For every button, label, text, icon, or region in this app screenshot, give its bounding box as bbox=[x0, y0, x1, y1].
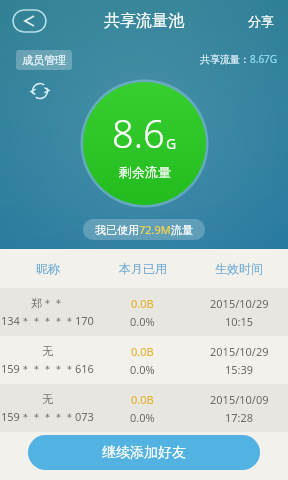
button[interactable]: Refresh bbox=[29, 80, 51, 102]
staticText: 0.0% bbox=[130, 362, 155, 377]
staticText: 本月已用 bbox=[119, 261, 167, 276]
staticText: 8.6 bbox=[112, 107, 165, 159]
staticText: 2015/10/29 bbox=[210, 296, 269, 311]
staticText: 无 bbox=[42, 344, 53, 358]
staticText: 共享流量： bbox=[200, 53, 250, 66]
button[interactable]: 成员管理 bbox=[16, 50, 72, 70]
staticText: 8.67G bbox=[250, 52, 278, 66]
staticText: 10:15 bbox=[225, 314, 254, 329]
staticText: 134＊＊＊＊＊170 bbox=[1, 313, 94, 328]
staticText: 0.0% bbox=[130, 314, 155, 329]
staticText: 0.0B bbox=[131, 392, 154, 407]
staticText: 流量 bbox=[171, 223, 193, 237]
button[interactable]: 我已使用 bbox=[83, 219, 205, 240]
button[interactable]: Back bbox=[12, 9, 47, 33]
staticText: 159＊＊＊＊＊616 bbox=[1, 361, 94, 376]
button[interactable]: 继续添加好友 bbox=[28, 435, 260, 470]
staticText: 72.9M bbox=[139, 222, 171, 237]
staticText: 0.0B bbox=[131, 344, 154, 359]
staticText: 2015/10/09 bbox=[210, 392, 269, 407]
staticText: 我已使用 bbox=[95, 223, 139, 237]
staticText: 郑＊＊ bbox=[31, 296, 64, 310]
staticText: 0.0B bbox=[131, 296, 154, 311]
staticText: 分享 bbox=[248, 13, 274, 29]
staticText: 2015/10/29 bbox=[210, 344, 269, 359]
staticText: 15:39 bbox=[225, 362, 254, 377]
staticText: 生效时间 bbox=[215, 261, 263, 276]
button[interactable]: 无 bbox=[0, 336, 288, 384]
button[interactable]: 郑＊＊ bbox=[0, 288, 288, 336]
staticText: 成员管理 bbox=[22, 53, 66, 67]
staticText: 继续添加好友 bbox=[102, 444, 186, 462]
button[interactable]: 分享 bbox=[234, 4, 288, 38]
button[interactable]: 无 bbox=[0, 384, 288, 432]
staticText: 0.0% bbox=[130, 410, 155, 425]
staticText: 共享流量池 bbox=[104, 11, 184, 31]
staticText: 昵称 bbox=[36, 261, 60, 276]
staticText: 17:28 bbox=[225, 410, 254, 425]
staticText: 剩余流量 bbox=[119, 164, 171, 180]
staticText: 无 bbox=[42, 392, 53, 406]
staticText: 159＊＊＊＊＊073 bbox=[1, 409, 94, 424]
staticText: G bbox=[166, 134, 177, 153]
